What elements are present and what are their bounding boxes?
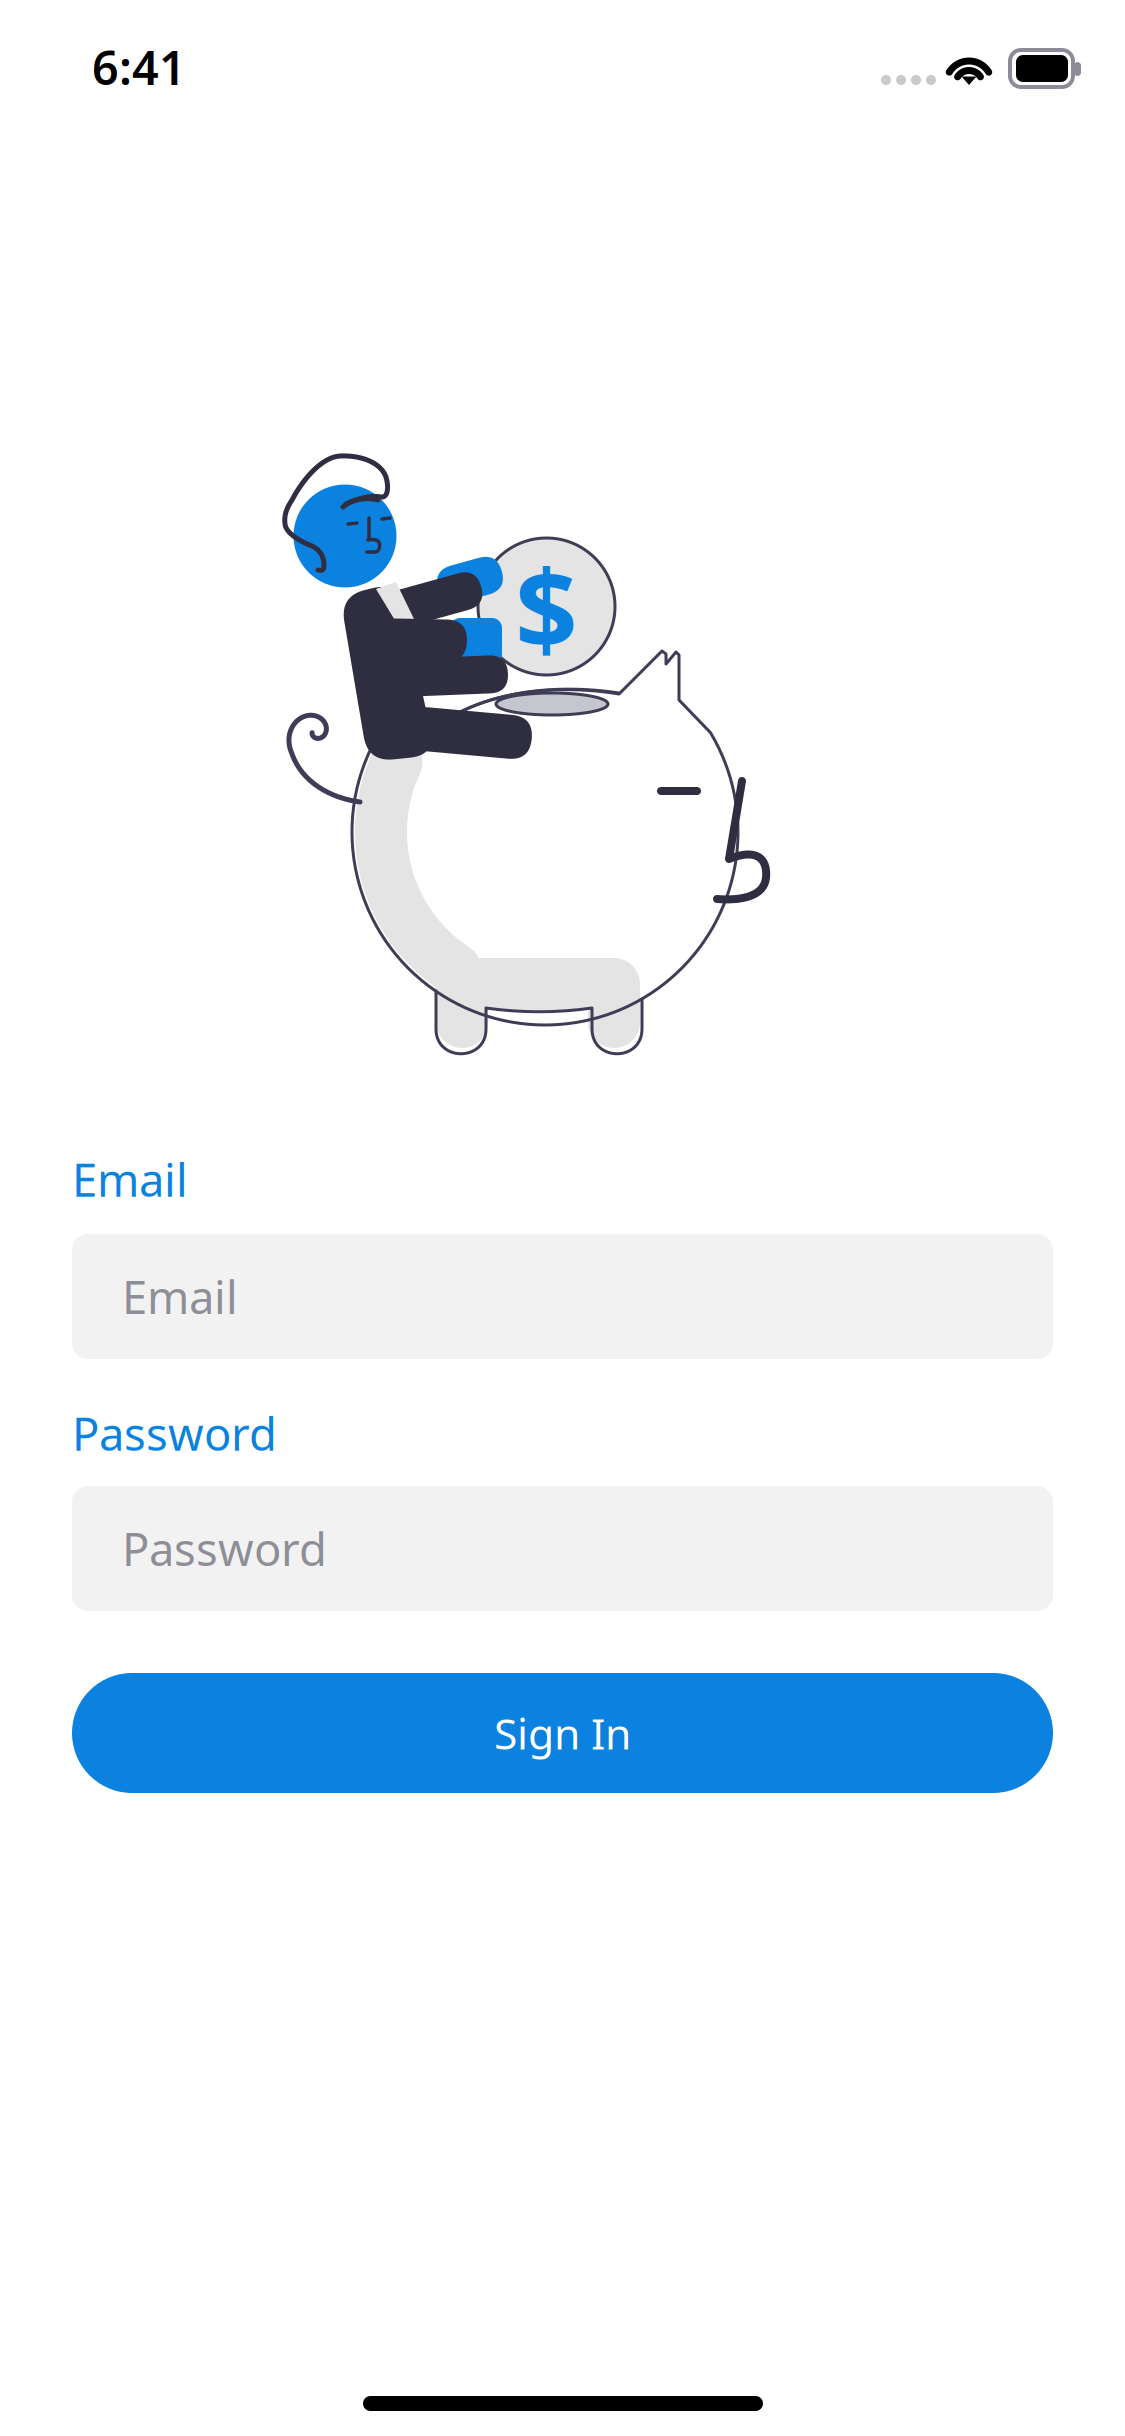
staticText: Email [72,1149,188,1209]
staticText: Password [122,1518,327,1579]
staticText: Email [122,1266,238,1327]
button[interactable]: Password [72,1486,1053,1611]
staticText: 6:41 [92,36,186,98]
staticText: $ [515,534,578,679]
staticText: Sign In [494,1705,631,1761]
button[interactable]: Email [72,1234,1053,1359]
button[interactable]: Sign In [72,1673,1053,1793]
staticText: Password [72,1403,277,1463]
